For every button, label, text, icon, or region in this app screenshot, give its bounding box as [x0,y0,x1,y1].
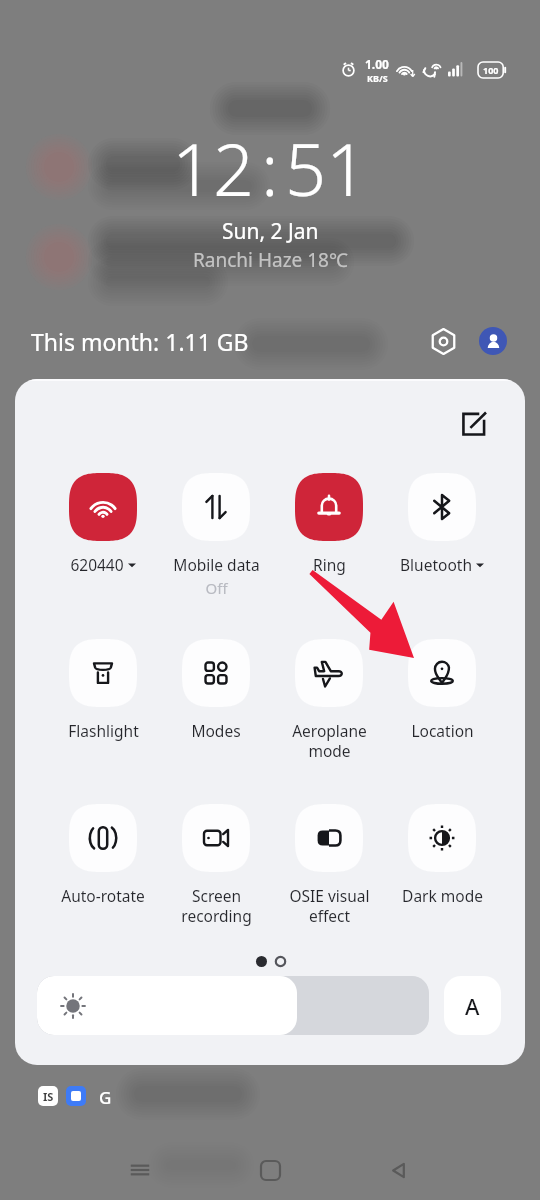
button[interactable]: Screen recording [160,804,272,926]
button[interactable]: Edit quick settings [452,402,496,446]
staticText: 51 [285,119,368,217]
staticText: IS [43,1089,54,1104]
button[interactable]: Bluetooth [386,473,498,575]
staticText: KB/S [367,72,388,84]
button[interactable]: Modes [160,639,272,741]
staticText: Ring [313,554,346,575]
staticText: 12 [172,119,255,217]
button[interactable]: Back [365,1140,431,1200]
staticText: Aeroplane mode [292,720,367,761]
button[interactable]: Ring [273,473,385,575]
button[interactable]: Flashlight [47,639,159,741]
staticText: OSIE visual effect [289,885,370,926]
staticText: 620440 [70,554,124,575]
staticText: Mobile data [173,554,260,575]
button[interactable]: A [444,976,501,1035]
button[interactable]: Aeroplane mode [273,639,385,761]
staticText: Screen recording [181,885,252,926]
staticText: 1.00 [365,56,389,72]
staticText: Location [411,720,474,741]
button[interactable]: Mobile data [160,473,272,598]
staticText: Flashlight [68,720,139,741]
staticText: Ranchi Haze 18℃ [193,247,348,273]
button[interactable]: Brightness [37,976,429,1035]
button[interactable]: OSIE visual effect [273,804,385,926]
staticText: Modes [191,720,241,741]
staticText: G [99,1086,112,1106]
staticText: 100 [483,64,499,76]
button[interactable]: Auto-rotate [47,804,159,906]
staticText: Auto-rotate [61,885,145,906]
button[interactable]: User account [479,327,507,355]
button[interactable]: Settings [421,319,465,363]
staticText: Dark mode [402,885,483,906]
staticText: Sun, 2 Jan [222,217,319,246]
button[interactable]: Location [386,639,498,741]
button[interactable]: Recents [107,1140,173,1200]
staticText: : [261,119,279,217]
button[interactable]: Home [237,1140,303,1200]
staticText: Off [205,578,228,598]
staticText: This month: 1.11 GB [31,326,249,357]
button[interactable]: Dark mode [386,804,498,906]
staticText: Bluetooth [400,554,472,575]
button[interactable]: 620440 [47,473,159,575]
staticText: A [465,991,480,1021]
